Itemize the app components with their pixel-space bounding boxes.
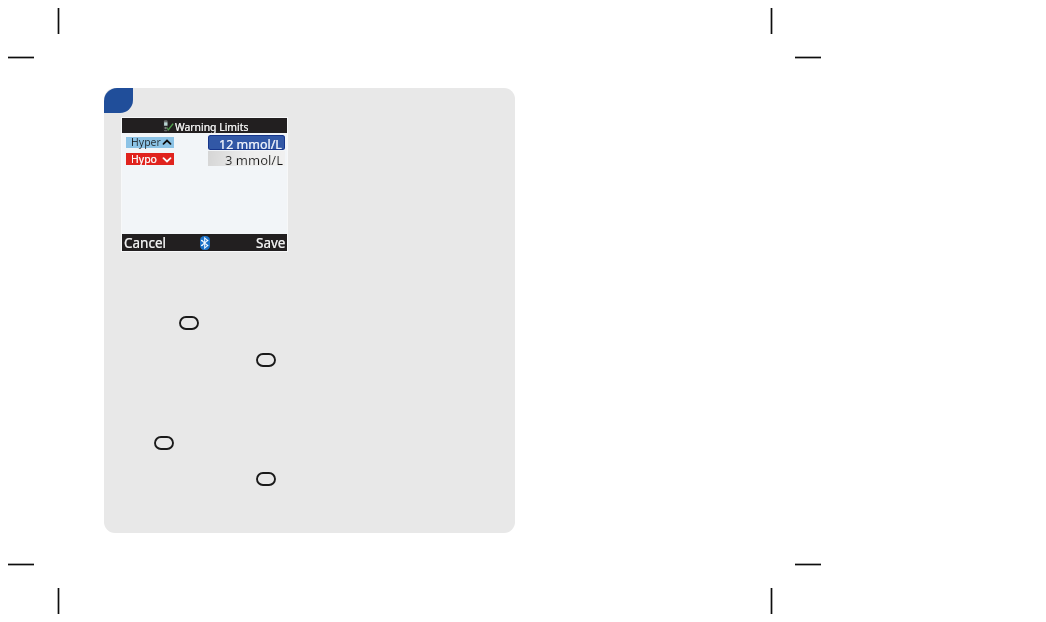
button[interactable]: Button key [154, 436, 174, 450]
staticText: Save [256, 234, 286, 251]
button[interactable]: 3 mmol/L [208, 151, 285, 166]
staticText: Hypo [131, 152, 157, 166]
button[interactable]: Button key [256, 472, 276, 486]
button[interactable]: Hypo [126, 151, 174, 167]
button[interactable]: Button key [256, 353, 276, 367]
staticText: 12 mmol/L [219, 136, 282, 149]
staticText: Cancel [124, 234, 167, 251]
staticText: Hyper [131, 135, 161, 149]
button[interactable]: Cancel [122, 234, 171, 251]
staticText: Warning Limits [175, 120, 249, 134]
button[interactable]: Hyper [126, 134, 174, 150]
button[interactable]: Save [252, 234, 287, 251]
staticText: 3 mmol/L [225, 151, 283, 166]
button[interactable]: Button key [179, 316, 199, 330]
button[interactable]: 12 mmol/L [209, 136, 284, 149]
button[interactable]: Bluetooth [200, 236, 210, 250]
